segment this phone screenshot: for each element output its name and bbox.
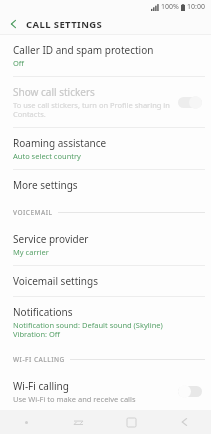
button[interactable]: Show call stickers — [0, 77, 211, 127]
staticText: Notification sound: Default sound (Skyli… — [13, 320, 163, 339]
staticText: Voicemail settings — [13, 274, 98, 288]
staticText: Show call stickers — [13, 85, 95, 99]
button[interactable]: Notifications — [0, 297, 211, 347]
staticText: 100% — [161, 2, 179, 12]
staticText: WI-FI CALLING — [13, 355, 65, 364]
button[interactable]: Toggle — [177, 384, 203, 398]
staticText: More settings — [13, 178, 78, 192]
button[interactable]: Switch apps — [52, 410, 105, 434]
button[interactable]: Roaming assistance — [0, 128, 211, 169]
staticText: VOICEMAIL — [13, 208, 53, 217]
button[interactable]: Service provider — [0, 224, 211, 265]
staticText: To use call stickers, turn on Profile sh… — [13, 100, 171, 119]
button[interactable]: Wi-Fi calling — [0, 371, 211, 410]
staticText: My carrier — [13, 247, 49, 257]
button[interactable]: More settings — [0, 170, 211, 200]
button[interactable]: Back — [158, 410, 211, 434]
staticText: Service provider — [13, 232, 89, 246]
staticText: Caller ID and spam protection — [13, 43, 154, 57]
button[interactable]: Voicemail settings — [0, 266, 211, 296]
staticText: Auto select country — [13, 151, 81, 161]
staticText: Off — [13, 58, 25, 68]
button[interactable]: Back — [0, 14, 26, 34]
staticText: Use Wi-Fi to make and receive calls when… — [13, 394, 171, 402]
staticText: Notifications — [13, 305, 73, 319]
button[interactable]: Toggle — [177, 95, 203, 109]
button[interactable]: Caller ID and spam protection — [0, 35, 211, 76]
staticText: CALL SETTINGS — [26, 18, 103, 31]
button[interactable]: Recents — [105, 410, 158, 434]
staticText: 10:00 — [187, 2, 205, 12]
staticText: Wi-Fi calling — [13, 379, 69, 393]
staticText: Roaming assistance — [13, 136, 107, 150]
